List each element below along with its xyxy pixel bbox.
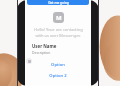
- staticText: Description: [32, 50, 51, 55]
- staticText: User Name: [32, 43, 57, 49]
- staticText: M: [56, 14, 62, 22]
- staticText: Option 2: [49, 73, 67, 79]
- button[interactable]: Get me going: [27, 0, 89, 5]
- button[interactable]: Option 2: [25, 73, 91, 79]
- button[interactable]: Option: [25, 62, 91, 68]
- staticText: with us over Messenger.: [35, 33, 81, 38]
- staticText: Option: [51, 62, 65, 68]
- staticText: Hello! Your are contacting: [34, 27, 83, 32]
- button[interactable]: Menu: [26, 58, 32, 64]
- button[interactable]: User Name: [32, 43, 91, 55]
- staticText: Get me going: [48, 1, 69, 5]
